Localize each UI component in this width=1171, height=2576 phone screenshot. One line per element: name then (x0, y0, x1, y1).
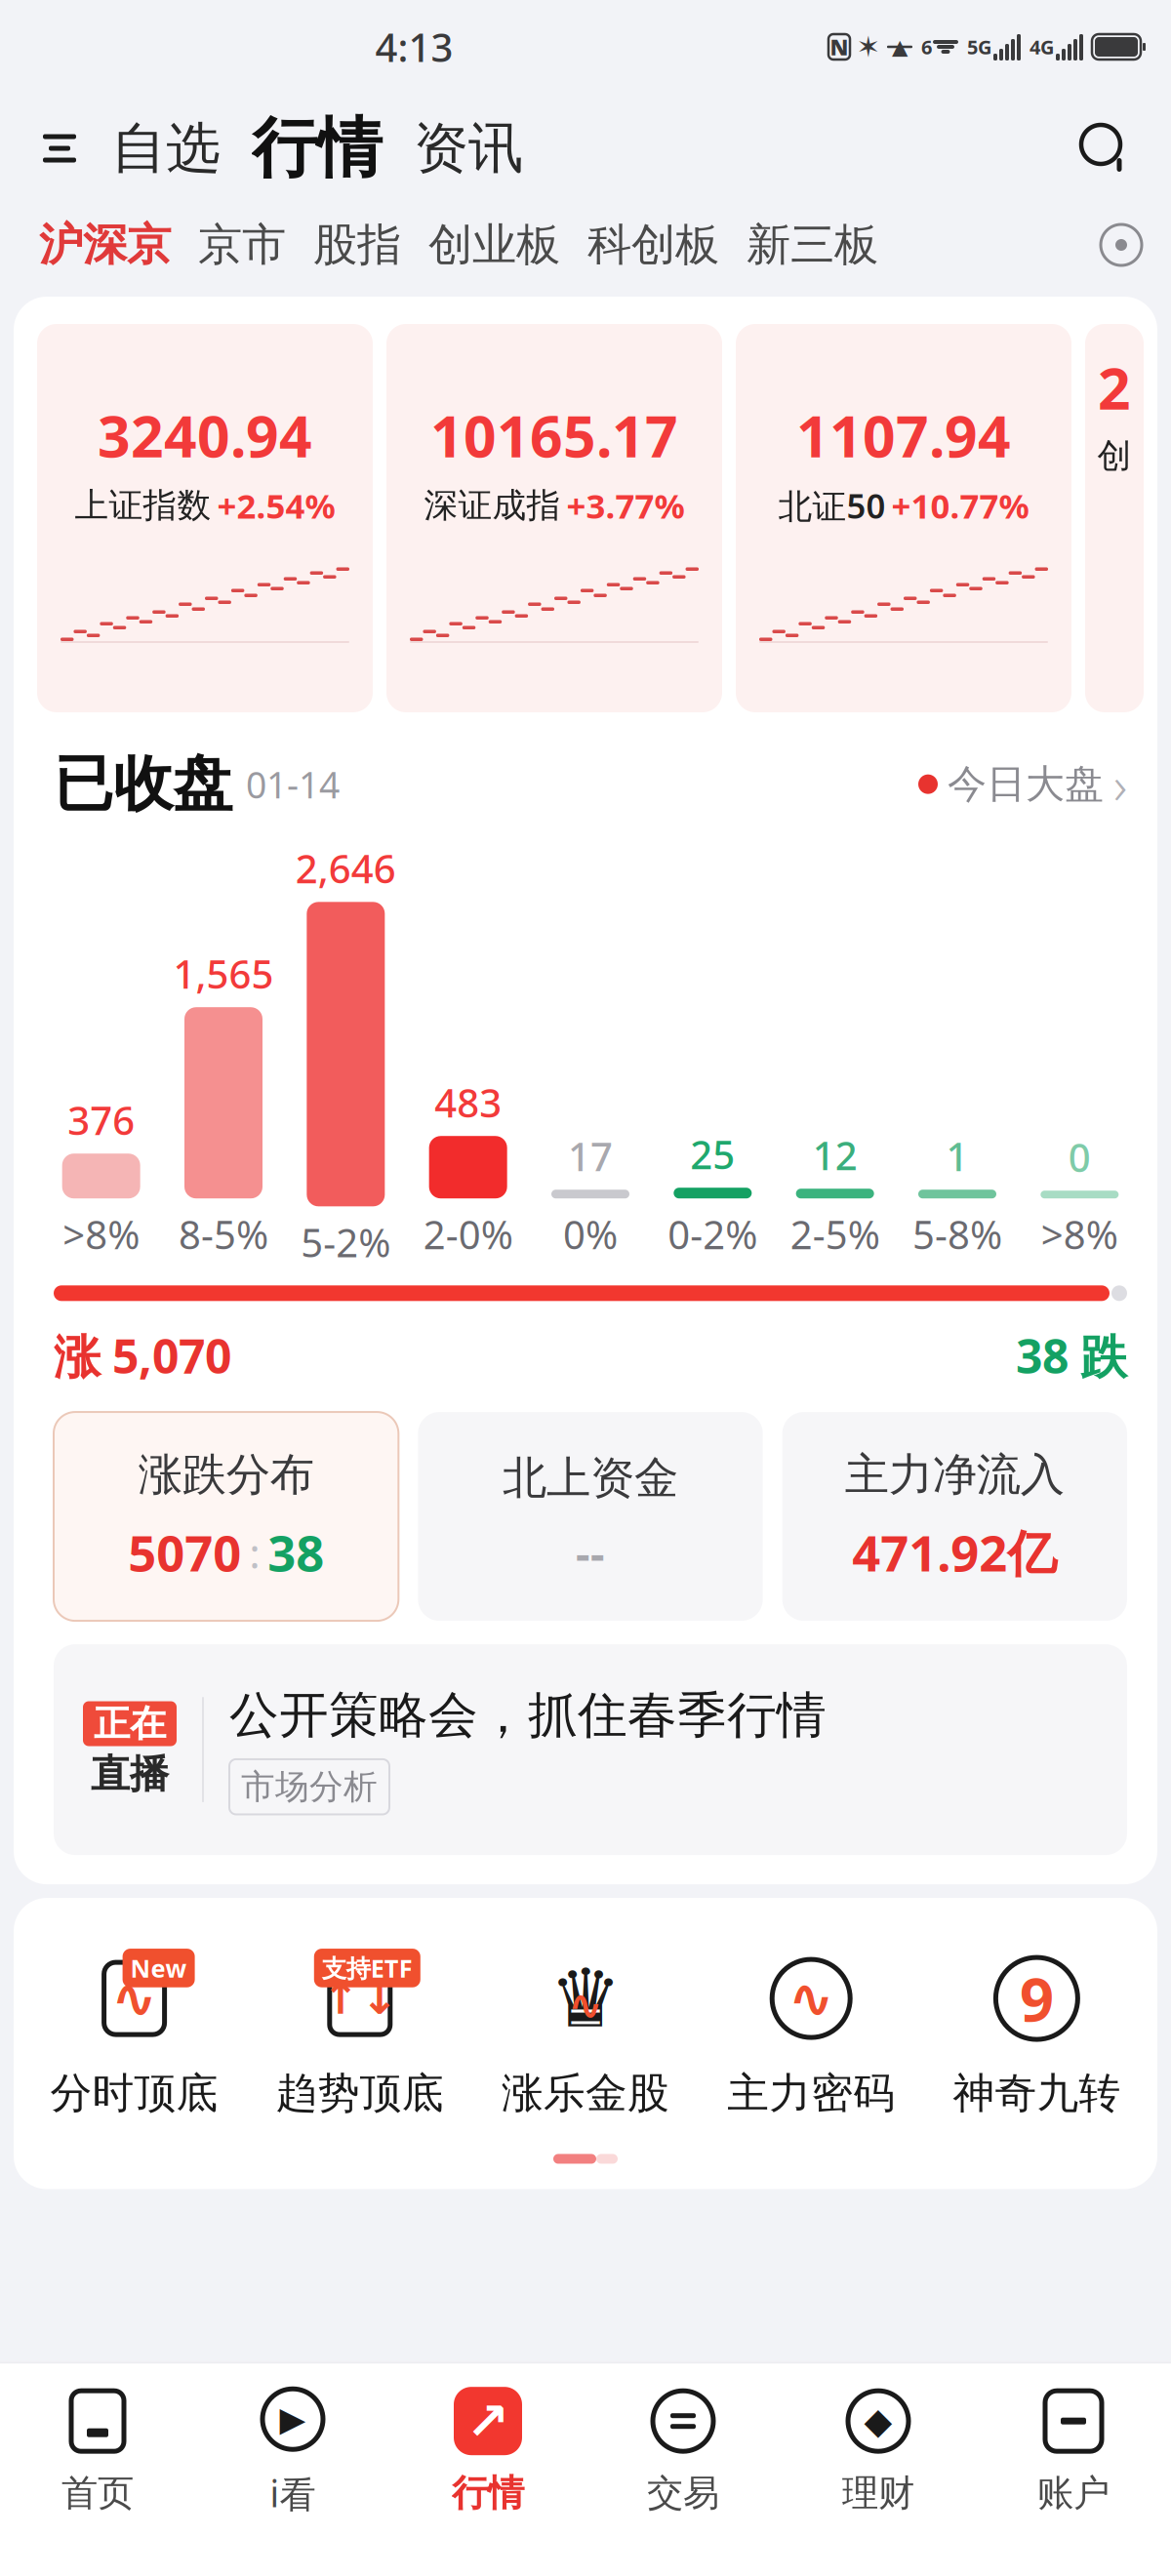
staticText: ∿ (788, 1967, 834, 2029)
staticText: 471.92亿 (852, 1520, 1057, 1585)
staticText: 涨跌分布 (138, 1448, 314, 1502)
staticText: 深证成指 (424, 485, 561, 526)
button[interactable]: 今日大盘 (918, 750, 1127, 819)
staticText: 2,646 (295, 842, 396, 894)
button[interactable]: ↑ (247, 1949, 473, 2119)
staticText: 主力密码 (727, 2068, 895, 2119)
button[interactable]: 正在 (54, 1644, 1127, 1855)
staticText: N (830, 32, 848, 61)
staticText: 0 (1068, 1131, 1091, 1183)
button[interactable]: Search (1066, 109, 1144, 187)
staticText: 376 (68, 1094, 135, 1146)
staticText: 5070 (128, 1520, 241, 1585)
staticText: +10.77% (891, 483, 1029, 528)
staticText: 支持ETF (322, 1952, 413, 1984)
staticText: 38 (268, 1520, 324, 1585)
staticText: ✶ (856, 31, 881, 63)
staticText: 自选 (111, 115, 221, 182)
button[interactable]: 主力净流入 (782, 1412, 1127, 1621)
button[interactable]: 首页 (0, 2383, 195, 2516)
button[interactable]: 新三板 (733, 211, 892, 279)
staticText: New (130, 1952, 187, 1984)
staticText: 5G (967, 34, 991, 60)
staticText: 趋势顶底 (276, 2068, 444, 2119)
staticText: 分时顶底 (50, 2068, 218, 2119)
button[interactable]: Edit categories (1085, 209, 1157, 281)
staticText: 9 (1020, 1959, 1054, 2038)
staticText: 行情 (452, 2471, 524, 2516)
staticText: 理财 (842, 2471, 914, 2516)
button[interactable]: 行情 (236, 108, 398, 188)
staticText: 京市 (198, 218, 286, 272)
staticText: 公开策略会，抓住春季行情 (229, 1685, 827, 1746)
staticText: 主力净流入 (845, 1448, 1064, 1502)
button[interactable]: ♛ (473, 1949, 698, 2119)
staticText: ∿ (568, 1982, 603, 2029)
staticText: 创业板 (428, 218, 560, 272)
staticText: ▶ (280, 2400, 306, 2438)
staticText: 8-5% (179, 1208, 268, 1260)
button[interactable]: 账户 (976, 2383, 1171, 2516)
button[interactable]: 股指 (300, 211, 415, 279)
staticText: 2-0% (423, 1208, 513, 1260)
button[interactable]: 北上资金 (418, 1412, 763, 1621)
staticText: 直播 (91, 1750, 169, 1798)
staticText: 5-8% (912, 1208, 1002, 1260)
staticText: : (249, 1525, 260, 1580)
button[interactable]: Menu (23, 109, 96, 187)
staticText: 今日大盘 (948, 760, 1104, 808)
button[interactable]: 京市 (184, 211, 300, 279)
staticText: 12 (813, 1129, 857, 1181)
staticText: 1 (946, 1130, 969, 1182)
staticText: 涨乐金股 (502, 2068, 669, 2119)
button[interactable]: 1107.94 (736, 324, 1071, 712)
staticText: 资讯 (414, 115, 523, 182)
staticText: 2 (1098, 349, 1131, 425)
staticText: 2-5% (790, 1208, 880, 1260)
staticText: 新三板 (747, 218, 878, 272)
staticText: ↓ (361, 1973, 398, 2024)
staticText: 483 (434, 1076, 502, 1128)
staticText: 沪深京 (39, 218, 171, 272)
staticText: 38 跌 (1016, 1324, 1127, 1387)
button[interactable]: ∿ (698, 1949, 924, 2119)
staticText: -- (576, 1523, 605, 1582)
staticText: 行情 (252, 108, 383, 188)
staticText: ∿ (111, 1967, 157, 2029)
staticText: 01-14 (246, 760, 340, 808)
button[interactable]: 自选 (96, 115, 236, 182)
staticText: 市场分析 (241, 1766, 378, 1808)
button[interactable]: ◆ (781, 2383, 976, 2516)
staticText: 17 (568, 1130, 613, 1182)
button[interactable]: 10165.17 (386, 324, 722, 712)
staticText: 3240.94 (98, 397, 312, 473)
staticText: 交易 (647, 2471, 719, 2516)
button[interactable]: 科创板 (574, 211, 733, 279)
button[interactable]: 交易 (585, 2383, 781, 2516)
staticText: 涨 5,070 (54, 1324, 231, 1387)
button[interactable]: 沪深京 (25, 211, 184, 279)
staticText: 账户 (1037, 2471, 1110, 2516)
staticText: 首页 (61, 2471, 134, 2516)
staticText: ◆ (864, 2400, 892, 2442)
staticText: 创 (1097, 435, 1131, 477)
staticText: ♛ (549, 1953, 622, 2044)
staticText: ↗ (466, 2391, 510, 2451)
staticText: i看 (270, 2469, 316, 2517)
button[interactable]: 资讯 (398, 115, 539, 182)
staticText: 6 (921, 34, 932, 60)
button[interactable]: ∿ (21, 1949, 247, 2119)
staticText: 4G (1030, 34, 1054, 60)
staticText: › (1113, 750, 1127, 819)
staticText: ▲ (892, 35, 908, 59)
button[interactable]: 涨跌分布 (54, 1412, 398, 1621)
button[interactable]: ↗ (390, 2383, 585, 2516)
staticText: 0-2% (668, 1208, 758, 1260)
staticText: 北上资金 (503, 1451, 678, 1505)
staticText: 正在 (94, 1701, 166, 1746)
button[interactable]: ▶ (195, 2381, 390, 2517)
button[interactable]: 3240.94 (37, 324, 373, 712)
button[interactable]: 创业板 (415, 211, 574, 279)
staticText: 北证50 (778, 483, 886, 528)
button[interactable]: 9 (924, 1949, 1150, 2119)
